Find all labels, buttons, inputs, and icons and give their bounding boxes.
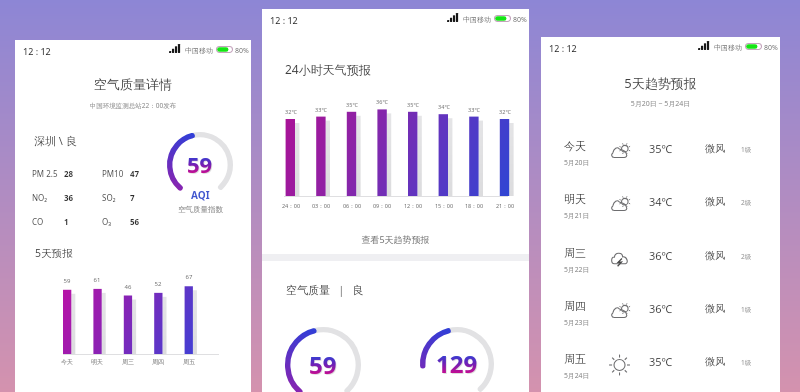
button[interactable]: 周四 bbox=[541, 274, 780, 327]
staticText: 56 bbox=[130, 216, 140, 227]
staticText: 34℃ bbox=[649, 194, 673, 209]
staticText: 5月21日 bbox=[564, 211, 590, 220]
staticText: 今天 bbox=[564, 139, 586, 153]
staticText: 80% bbox=[513, 15, 527, 25]
staticText: 06：00 bbox=[338, 202, 366, 210]
staticText: 35℃ bbox=[649, 354, 673, 369]
staticText: 空气质量详情 bbox=[15, 76, 251, 92]
staticText: 周四 bbox=[147, 358, 169, 366]
staticText: 5月22日 bbox=[564, 265, 590, 274]
staticText: 47 bbox=[130, 168, 140, 179]
staticText: 61 bbox=[86, 276, 108, 284]
staticText: 12 : 12 bbox=[270, 14, 298, 26]
staticText: 09：00 bbox=[368, 202, 396, 210]
staticText: SO₂ bbox=[102, 192, 130, 203]
staticText: 微风 bbox=[705, 302, 725, 315]
staticText: 2级 bbox=[741, 198, 752, 207]
staticText: PM 2.5 bbox=[32, 168, 64, 179]
staticText: 12 : 12 bbox=[549, 42, 577, 54]
staticText: 59 bbox=[310, 349, 338, 382]
staticText: 深圳 \ 良 bbox=[34, 133, 77, 148]
staticText: 34℃ bbox=[432, 103, 456, 110]
staticText: 微风 bbox=[705, 142, 725, 155]
staticText: 5月23日 bbox=[564, 318, 590, 327]
staticText: 周四 bbox=[564, 299, 586, 313]
staticText: 03：00 bbox=[307, 202, 335, 210]
staticText: 5月20日 ~ 5月24日 bbox=[541, 99, 780, 109]
other: Thunderstorm bbox=[608, 247, 632, 271]
staticText: 36℃ bbox=[370, 98, 394, 105]
staticText: 明天 bbox=[564, 192, 586, 206]
staticText: 18：00 bbox=[460, 202, 488, 210]
staticText: 中国环境监测总站22：00发布 bbox=[15, 101, 251, 110]
other: Partly cloudy bbox=[608, 140, 632, 164]
staticText: 80% bbox=[764, 43, 778, 53]
staticText: 微风 bbox=[705, 355, 725, 368]
staticText: PM10 bbox=[102, 168, 130, 179]
staticText: 中国移动 bbox=[463, 15, 491, 24]
staticText: 中国移动 bbox=[185, 46, 213, 55]
button[interactable]: 明天 bbox=[541, 167, 780, 220]
staticText: 59 bbox=[187, 149, 213, 179]
staticText: AQI bbox=[191, 188, 210, 202]
staticText: 查看5天趋势预报 bbox=[262, 233, 529, 245]
staticText: 36 bbox=[64, 192, 102, 203]
staticText: 129 bbox=[436, 347, 478, 380]
staticText: 周五 bbox=[178, 358, 200, 366]
staticText: 80% bbox=[235, 46, 249, 56]
staticText: 12：00 bbox=[399, 202, 427, 210]
staticText: 7 bbox=[130, 192, 135, 203]
staticText: 周三 bbox=[117, 358, 139, 366]
staticText: 5月24日 bbox=[564, 371, 590, 380]
staticText: 微风 bbox=[705, 195, 725, 208]
other: Partly cloudy bbox=[608, 300, 632, 324]
staticText: 中国移动 bbox=[714, 43, 742, 52]
staticText: 129 bbox=[437, 348, 479, 381]
staticText: 5月20日 bbox=[564, 158, 590, 167]
staticText: 周五 bbox=[564, 352, 586, 366]
button[interactable]: 今天 bbox=[541, 114, 780, 167]
staticText: 微风 bbox=[705, 249, 725, 262]
staticText: 24：00 bbox=[277, 202, 305, 210]
staticText: 明天 bbox=[86, 358, 108, 366]
staticText: 1级 bbox=[741, 145, 752, 154]
staticText: 35℃ bbox=[401, 101, 425, 108]
other: Sunny bbox=[608, 353, 632, 377]
staticText: 1级 bbox=[741, 358, 752, 367]
staticText: 2级 bbox=[741, 252, 752, 261]
staticText: 24小时天气预报 bbox=[285, 61, 371, 77]
staticText: 21：00 bbox=[491, 202, 519, 210]
staticText: 46 bbox=[117, 283, 139, 291]
staticText: 12 : 12 bbox=[23, 45, 51, 57]
staticText: 59 bbox=[56, 277, 78, 285]
other: Partly cloudy bbox=[608, 193, 632, 217]
staticText: 32℃ bbox=[493, 108, 517, 115]
button[interactable]: 周五 bbox=[541, 327, 780, 380]
staticText: 35℃ bbox=[649, 141, 673, 156]
staticText: 32℃ bbox=[279, 108, 303, 115]
staticText: 35℃ bbox=[340, 101, 364, 108]
staticText: 59 bbox=[309, 348, 337, 381]
staticText: 59 bbox=[188, 150, 214, 180]
staticText: 36℃ bbox=[649, 248, 673, 263]
staticText: 空气质量 ｜ 良 bbox=[286, 282, 364, 297]
button[interactable]: 周三 bbox=[541, 221, 780, 274]
staticText: 周三 bbox=[564, 246, 586, 260]
staticText: 36℃ bbox=[649, 301, 673, 316]
staticText: CO bbox=[32, 216, 64, 227]
staticText: 33℃ bbox=[462, 106, 486, 113]
staticText: NO₂ bbox=[32, 192, 64, 203]
staticText: O₃ bbox=[102, 216, 130, 227]
staticText: 5天趋势预报 bbox=[541, 74, 780, 92]
staticText: 5天预报 bbox=[35, 246, 73, 260]
staticText: 33℃ bbox=[309, 106, 333, 113]
staticText: 1级 bbox=[741, 305, 752, 314]
staticText: 今天 bbox=[56, 358, 78, 366]
staticText: 52 bbox=[147, 280, 169, 288]
staticText: 28 bbox=[64, 168, 102, 179]
staticText: 空气质量指数 bbox=[178, 205, 223, 214]
staticText: 1 bbox=[64, 216, 102, 227]
staticText: 15：00 bbox=[430, 202, 458, 210]
staticText: 67 bbox=[178, 273, 200, 281]
